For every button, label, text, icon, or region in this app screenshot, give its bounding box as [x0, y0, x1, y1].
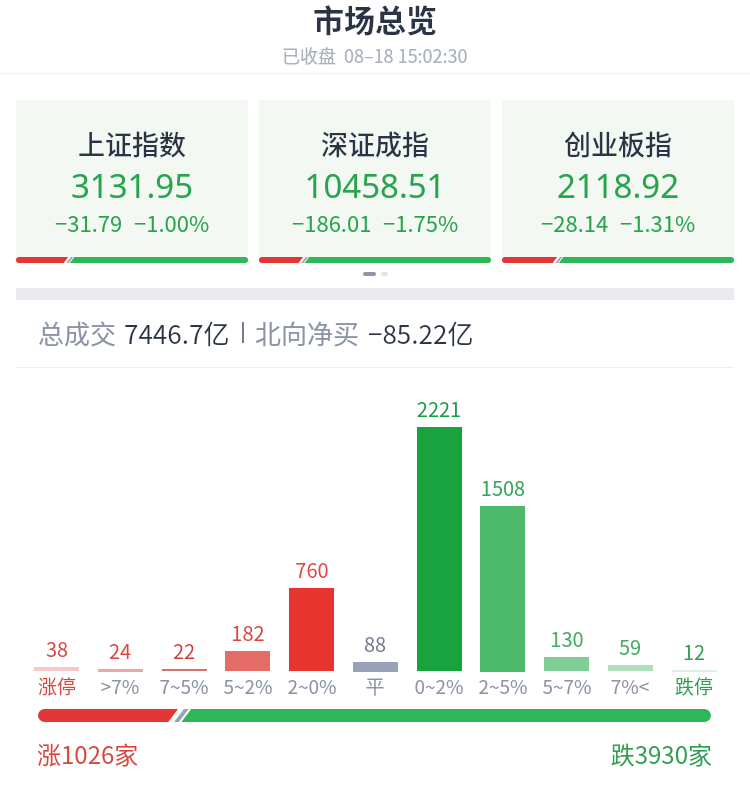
staticText: 12: [654, 637, 734, 666]
staticText: 已收盘: [282, 42, 336, 68]
staticText: 跌3930家: [500, 736, 712, 771]
staticText: 5~2%: [203, 672, 293, 700]
staticText: 深证成指: [259, 124, 491, 163]
staticText: 3131.95: [16, 163, 248, 208]
staticText: 总成交: [38, 314, 117, 352]
staticText: 北向净买: [255, 314, 360, 352]
staticText: −1.00%: [134, 206, 210, 238]
staticText: −1.31%: [620, 206, 696, 238]
staticText: 5~7%: [522, 672, 612, 700]
button[interactable]: 深证成指: [259, 100, 491, 263]
staticText: 2221: [399, 394, 479, 423]
staticText: 7%<: [585, 672, 675, 700]
staticText: 0~2%: [394, 672, 484, 700]
staticText: 跌停: [649, 672, 739, 700]
staticText: 22: [144, 636, 224, 665]
staticText: 涨1026家: [37, 736, 139, 771]
staticText: −28.14: [541, 206, 609, 238]
staticText: 38: [17, 634, 97, 663]
staticText: 08–18 15:02:30: [344, 42, 468, 68]
staticText: 平: [330, 672, 420, 700]
staticText: 59: [590, 632, 670, 661]
staticText: 市场总览: [313, 0, 437, 41]
staticText: 130: [527, 624, 607, 653]
staticText: 2118.92: [502, 163, 734, 208]
staticText: 2~0%: [267, 672, 357, 700]
staticText: −31.79: [55, 206, 123, 238]
staticText: 24: [80, 636, 160, 665]
staticText: 182: [208, 618, 288, 647]
staticText: 10458.51: [259, 163, 491, 208]
staticText: 2~5%: [458, 672, 548, 700]
staticText: 上证指数: [16, 124, 248, 163]
staticText: 创业板指: [502, 124, 734, 163]
staticText: 7~5%: [139, 672, 229, 700]
staticText: >7%: [75, 672, 165, 700]
staticText: 7446.7亿: [124, 314, 230, 352]
staticText: −1.75%: [383, 206, 459, 238]
button[interactable]: 创业板指: [502, 100, 734, 263]
button[interactable]: 上证指数: [16, 100, 248, 263]
staticText: 1508: [463, 473, 543, 502]
staticText: −85.22亿: [368, 314, 474, 352]
staticText: 88: [335, 629, 415, 658]
staticText: 760: [272, 555, 352, 584]
staticText: −186.01: [292, 206, 372, 238]
staticText: 涨停: [12, 672, 102, 700]
